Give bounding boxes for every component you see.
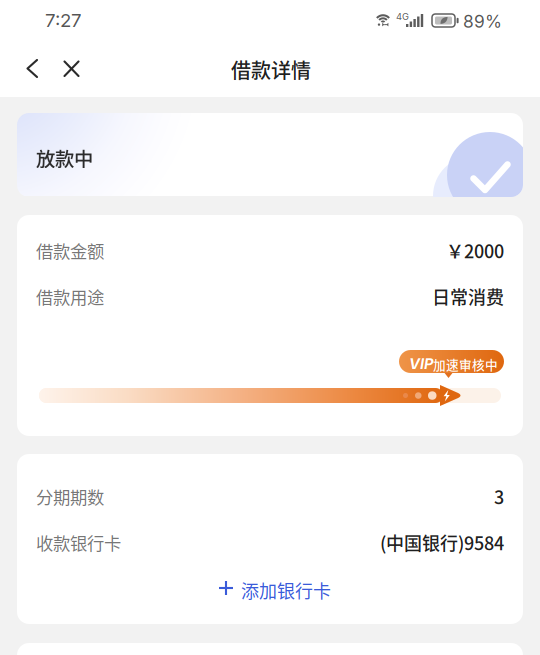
staticText: 收款银行卡 bbox=[36, 530, 121, 555]
staticText: 7:27 bbox=[45, 9, 82, 32]
staticText: 89% bbox=[463, 11, 502, 32]
staticText: (中国银行)9584 bbox=[380, 529, 504, 556]
staticText: 4G bbox=[396, 11, 409, 22]
staticText: VIP bbox=[409, 355, 434, 373]
staticText: 分期期数 bbox=[36, 484, 104, 509]
staticText: 添加银行卡 bbox=[241, 577, 331, 603]
staticText: 3 bbox=[494, 483, 504, 510]
staticText: 借款用途 bbox=[36, 284, 104, 309]
staticText: 借款详情 bbox=[231, 55, 311, 84]
staticText: 放款中 bbox=[36, 144, 93, 172]
staticText: 借款金额 bbox=[36, 238, 104, 263]
button[interactable]: Back bbox=[16, 46, 56, 90]
button[interactable]: Close bbox=[51, 46, 93, 90]
staticText: 日常消费 bbox=[432, 283, 504, 310]
staticText: 加速审核中 bbox=[433, 355, 498, 373]
staticText: ￥2000 bbox=[446, 237, 504, 264]
button[interactable]: 添加银行卡 bbox=[17, 567, 523, 611]
